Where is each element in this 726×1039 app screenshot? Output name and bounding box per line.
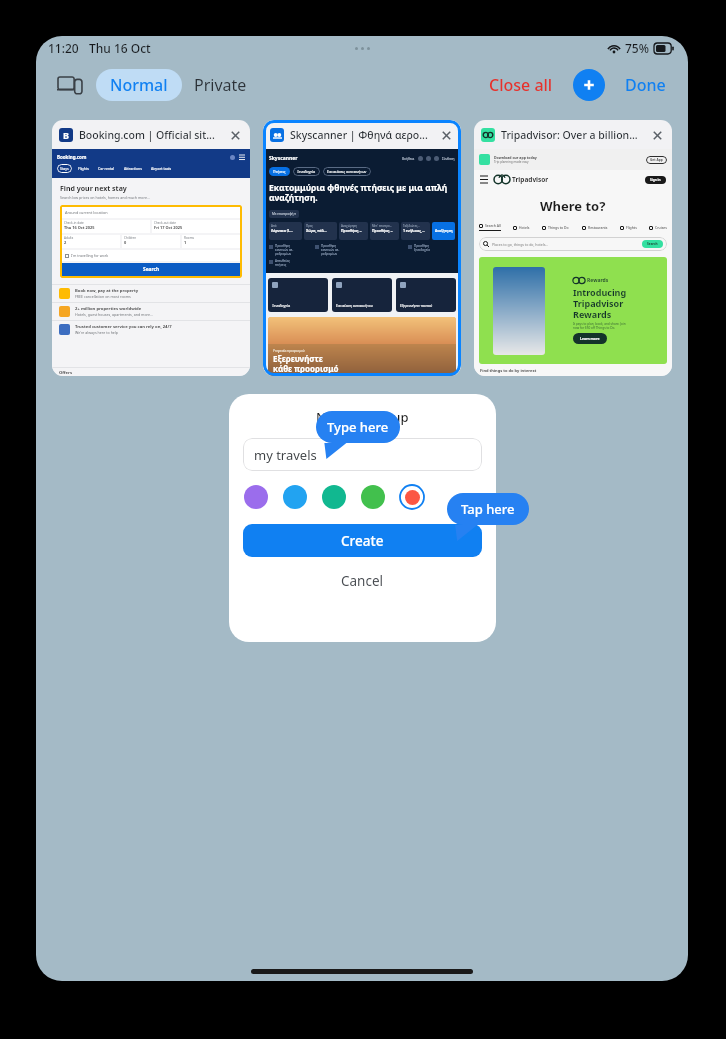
button[interactable]: Colour option — [243, 484, 269, 510]
staticText: Type here — [327, 418, 389, 436]
staticText: Offers — [59, 370, 73, 376]
button[interactable]: Close tab — [227, 127, 243, 143]
staticText: Flights — [626, 225, 637, 230]
button[interactable]: Cancel — [229, 567, 496, 595]
staticText: Search — [647, 242, 658, 246]
button[interactable]: Colour option — [399, 484, 425, 510]
staticText: Thu 16 Oct 2025 — [64, 225, 95, 230]
staticText: 75% — [625, 40, 649, 56]
staticText: Υπηρεσία προορισμού — [273, 349, 305, 353]
staticText: 2+ million properties worldwide — [75, 306, 142, 312]
staticText: Σύνδεση — [442, 157, 455, 161]
staticText: It pays to plan, book, and share. Join n… — [573, 322, 626, 330]
button[interactable]: my travels — [243, 438, 482, 471]
staticText: Private — [194, 74, 247, 96]
button[interactable]: Done — [619, 68, 672, 102]
staticText: Done — [625, 74, 666, 96]
staticText: Stays — [60, 166, 69, 171]
staticText: Trusted customer service you can rely on… — [75, 324, 172, 330]
button[interactable]: Colour option — [360, 484, 386, 510]
staticText: Βοήθεια — [402, 157, 415, 161]
button[interactable]: Skyscanner | Φθηνά αερο... — [263, 120, 461, 376]
staticText: Sign in — [650, 178, 661, 182]
staticText: Cruises — [655, 225, 667, 230]
staticText: Προς — [306, 224, 314, 228]
button[interactable]: Tripadvisor: Over a billion... — [474, 120, 672, 376]
staticText: Around current location — [65, 210, 108, 215]
button[interactable]: Colour option — [321, 484, 347, 510]
staticText: Προσθήκη κοντινών αε- ροδρομίων — [321, 244, 340, 256]
staticText: B — [63, 129, 69, 141]
staticText: Where to? — [540, 197, 606, 215]
staticText: Με επιστροφή ▾ — [272, 212, 296, 216]
button[interactable]: Tab overview — [52, 67, 88, 103]
staticText: Rooms — [184, 236, 195, 240]
staticText: Από — [271, 224, 277, 228]
staticText: 0 — [124, 240, 127, 245]
staticText: Places to go, things to do, hotels... — [492, 242, 549, 247]
staticText: Ενοικίαση αυτοκινήτου — [336, 303, 373, 308]
staticText: Learn more — [580, 336, 600, 341]
staticText: Hotels — [519, 225, 530, 230]
staticText: my travels — [254, 446, 317, 464]
staticText: Children — [124, 236, 137, 240]
staticText: Check-in date — [64, 221, 84, 225]
staticText: Close all — [489, 74, 553, 96]
button[interactable]: Close tab — [649, 127, 665, 143]
staticText: Get App — [650, 158, 663, 162]
staticText: Cancel — [341, 572, 384, 590]
staticText: Αναζήτηση — [435, 229, 453, 233]
button[interactable]: Create — [243, 524, 482, 557]
staticText: 1 — [184, 240, 187, 245]
staticText: 1 ενήλικας,... — [403, 228, 425, 233]
staticText: Introducing Tripadvisor Rewards — [573, 286, 627, 320]
staticText: Προσθήκη ξενοδοχείο — [414, 244, 431, 252]
staticText: Προσθήκη ... — [341, 228, 363, 233]
staticText: Trip planning made easy — [494, 160, 529, 164]
staticText: Tap here — [461, 500, 515, 518]
staticText: Πτήσεις — [273, 169, 286, 174]
button[interactable]: Close tab — [438, 127, 454, 143]
staticText: Airport taxis — [151, 166, 172, 171]
staticText: Ταξιδιώτες... — [403, 224, 420, 228]
staticText: Προσθήκη ... — [372, 228, 394, 233]
staticText: Find things to do by interest — [480, 368, 537, 373]
staticText: Create — [341, 532, 384, 550]
staticText: Check-out date — [154, 221, 176, 225]
staticText: Fri 17 Oct 2025 — [154, 225, 183, 230]
staticText: FREE cancellation on most rooms — [75, 294, 131, 299]
button[interactable]: Normal — [96, 69, 182, 101]
button[interactable]: New tab — [573, 69, 605, 101]
staticText: Εκατομμύρια φθηνές πτήσεις με μια απλή α… — [269, 182, 448, 204]
staticText: We're always here to help — [75, 330, 119, 335]
staticText: I'm travelling for work — [71, 253, 109, 258]
staticText: Thu 16 Oct — [89, 40, 151, 56]
button[interactable]: Colour option — [282, 484, 308, 510]
button[interactable]: Close all — [483, 68, 559, 102]
staticText: Attractions — [124, 166, 142, 171]
staticText: Tripadvisor — [512, 175, 549, 184]
staticText: Αναχώρηση — [341, 224, 358, 228]
staticText: Find your next stay — [60, 184, 127, 194]
staticText: Μετ' επιστρο... — [372, 224, 393, 228]
button[interactable]: B — [52, 120, 250, 376]
staticText: Book now, pay at the property — [75, 288, 139, 294]
staticText: Adults — [64, 236, 74, 240]
staticText: Λάρνακα (L... — [271, 228, 293, 233]
staticText: Normal — [110, 74, 168, 96]
staticText: New tab group — [316, 408, 409, 426]
staticText: Ξενοδοχεία — [297, 169, 316, 174]
staticText: Restaurants — [588, 225, 608, 230]
staticText: Απευθείας πτήσεις — [275, 259, 290, 267]
staticText: 11:20 — [48, 40, 79, 56]
staticText: Ξενοδοχεία — [272, 303, 291, 308]
staticText: 2 — [64, 240, 67, 245]
staticText: Χώρα, πόλ... — [306, 228, 327, 233]
staticText: Search All — [485, 223, 501, 228]
staticText: Προσθήκη κοντινών αε- ροδρομίων — [275, 244, 294, 256]
staticText: Search low prices on hotels, homes and m… — [60, 195, 150, 200]
button[interactable]: Private — [182, 69, 259, 101]
staticText: Skyscanner — [269, 155, 298, 162]
staticText: Download our app today — [494, 155, 537, 160]
staticText: Εξερευνήστε κάθε προορισμό — [273, 353, 339, 374]
